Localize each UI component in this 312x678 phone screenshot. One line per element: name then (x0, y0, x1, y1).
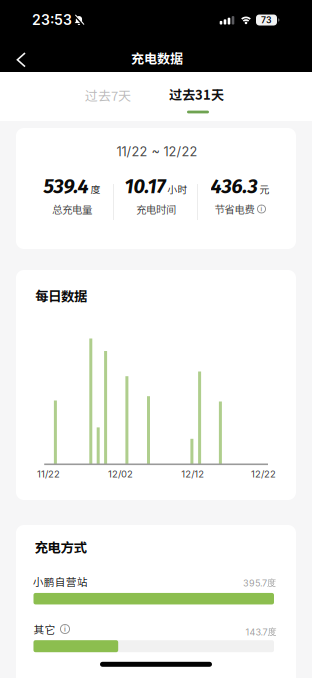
staticText: 充电方式 (35, 537, 87, 556)
button[interactable]: Back (8, 47, 34, 72)
staticText: 11/22 (37, 468, 60, 480)
staticText: 其它 (33, 621, 55, 637)
staticText: 23:53 (32, 11, 72, 28)
button[interactable]: More info (257, 205, 265, 213)
staticText: 元 (259, 182, 269, 196)
staticText: 过去7天 (85, 85, 131, 104)
staticText: 总充电量 (52, 201, 92, 217)
staticText: 度 (90, 182, 100, 196)
staticText: 395.7度 (243, 577, 276, 589)
staticText: 12/22 (251, 468, 276, 480)
button[interactable]: 过去7天 (68, 75, 148, 115)
staticText: 小鹏自营站 (33, 574, 88, 589)
staticText: 436.3 (210, 174, 257, 198)
staticText: 11/22 ~ 12/22 (116, 144, 197, 159)
staticText: 过去31天 (169, 84, 224, 103)
staticText: 10.17 (124, 174, 165, 198)
button[interactable]: More info (60, 624, 69, 633)
staticText: 12/12 (181, 468, 204, 480)
staticText: 143.7度 (245, 626, 276, 638)
staticText: 每日数据 (35, 286, 87, 305)
staticText: 539.4 (43, 174, 88, 198)
staticText: 73 (261, 15, 272, 25)
staticText: 节省电费 (214, 201, 254, 217)
staticText: 12/02 (108, 468, 133, 480)
staticText: 小时 (167, 182, 187, 196)
staticText: 充电时间 (136, 201, 176, 217)
staticText: 充电数据 (131, 48, 183, 67)
staticText: i (260, 205, 262, 213)
staticText: i (64, 625, 66, 633)
button[interactable]: 过去31天 (151, 72, 241, 121)
